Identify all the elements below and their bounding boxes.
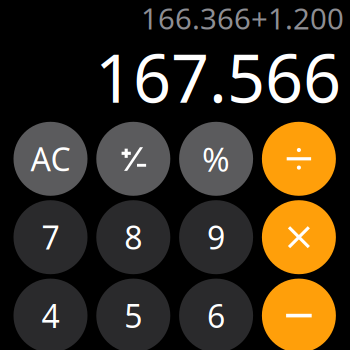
button[interactable]: 5 (96, 279, 171, 350)
staticText: 5 (124, 294, 142, 337)
button[interactable]: Divide (261, 122, 336, 196)
staticText: 7 (41, 216, 59, 258)
staticText: 6 (207, 294, 225, 337)
button[interactable]: Minus (261, 279, 336, 350)
button[interactable]: AC (13, 122, 88, 196)
button[interactable]: 7 (13, 200, 88, 274)
staticText: AC (30, 138, 70, 180)
button[interactable]: 9 (179, 200, 254, 274)
staticText: 4 (41, 294, 59, 337)
button[interactable]: 4 (13, 279, 88, 350)
staticText: 8 (124, 216, 142, 258)
button[interactable]: Plus minus (96, 122, 171, 196)
button[interactable]: % (179, 122, 254, 196)
staticText: 166.366+1.200 (141, 0, 344, 37)
staticText: % (202, 137, 230, 181)
button[interactable]: 8 (96, 200, 171, 274)
button[interactable]: Multiply (261, 200, 336, 274)
staticText: 9 (207, 216, 225, 258)
staticText: 167.566 (95, 33, 341, 121)
button[interactable]: 6 (179, 279, 254, 350)
